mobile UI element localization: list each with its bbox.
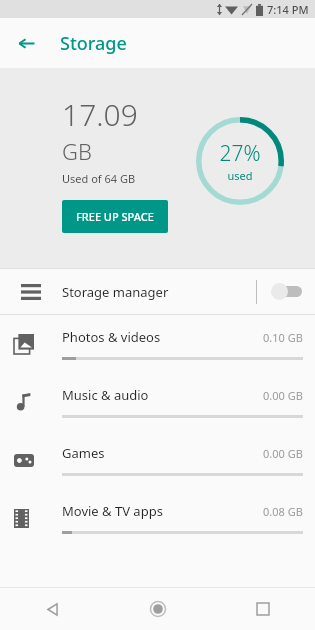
- staticText: GB: [62, 136, 92, 166]
- button[interactable]: Recent apps: [210, 588, 315, 630]
- staticText: Games: [62, 444, 105, 462]
- staticText: 0.00 GB: [263, 388, 303, 403]
- button[interactable]: Movie & TV apps: [0, 489, 315, 547]
- button[interactable]: Music & audio: [0, 373, 315, 431]
- staticText: Photos & videos: [62, 328, 161, 346]
- staticText: 7:14 PM: [267, 2, 309, 17]
- staticText: 17.09: [62, 94, 138, 135]
- button[interactable]: Games: [0, 431, 315, 489]
- staticText: Storage: [60, 31, 127, 56]
- staticText: FREE UP SPACE: [76, 209, 154, 224]
- staticText: 0.08 GB: [263, 504, 303, 519]
- staticText: Used of 64 GB: [62, 171, 136, 186]
- button[interactable]: Back: [0, 588, 105, 630]
- staticText: used: [227, 168, 253, 183]
- button[interactable]: Storage manager: [0, 269, 315, 314]
- staticText: 0.10 GB: [263, 330, 303, 345]
- button[interactable]: Storage manager toggle: [257, 269, 315, 314]
- staticText: 0.00 GB: [263, 446, 303, 461]
- staticText: Movie & TV apps: [62, 502, 163, 520]
- staticText: Storage manager: [62, 283, 169, 301]
- staticText: Music & audio: [62, 386, 149, 404]
- button[interactable]: Home: [105, 588, 210, 630]
- staticText: 27%: [219, 139, 261, 168]
- button[interactable]: Photos & videos: [0, 315, 315, 373]
- button[interactable]: Back: [8, 25, 44, 61]
- button[interactable]: FREE UP SPACE: [62, 200, 168, 233]
